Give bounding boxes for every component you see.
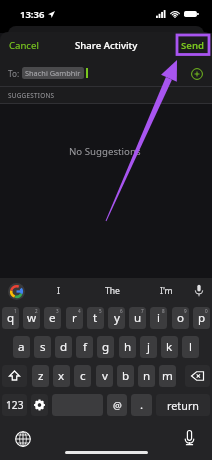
staticText: I — [57, 285, 60, 297]
staticText: . — [140, 397, 144, 413]
staticText: @ — [113, 399, 122, 412]
button[interactable]: m — [159, 365, 176, 387]
staticText: q — [7, 310, 15, 326]
button[interactable]: p — [193, 307, 210, 329]
staticText: Send — [181, 39, 205, 52]
staticText: 0 — [205, 308, 208, 314]
staticText: return — [167, 398, 200, 413]
staticText: d — [60, 339, 68, 355]
button[interactable]: Shift — [2, 365, 27, 387]
staticText: The — [105, 285, 120, 297]
button[interactable]: Shachi Gambhir — [25, 68, 81, 78]
staticText: m — [162, 368, 173, 384]
button[interactable]: q — [2, 307, 19, 329]
staticText: t — [93, 310, 98, 326]
staticText: To: — [8, 68, 20, 79]
staticText: u — [134, 310, 142, 326]
button[interactable]: Change language — [15, 431, 31, 447]
button[interactable]: g — [97, 336, 114, 358]
staticText: I'm — [160, 285, 173, 297]
staticText: Share Activity — [75, 39, 138, 52]
staticText: e — [49, 310, 56, 326]
button[interactable]: Keyboard settings — [31, 394, 48, 416]
staticText: 7 — [141, 308, 144, 314]
staticText: Shachi Gambhir — [25, 68, 81, 78]
button[interactable]: w — [23, 307, 40, 329]
staticText: x — [58, 368, 65, 384]
button[interactable]: a — [13, 336, 30, 358]
button[interactable]: o — [172, 307, 189, 329]
staticText: Cancel — [9, 39, 39, 52]
button[interactable]: u — [129, 307, 146, 329]
button[interactable]: h — [119, 336, 136, 358]
button[interactable]: Add contact — [191, 68, 203, 80]
staticText: 2 — [35, 308, 38, 314]
staticText: w — [27, 310, 37, 326]
button[interactable]: Cancel — [9, 39, 39, 52]
button[interactable]: Voice typing — [184, 430, 195, 446]
staticText: o — [177, 310, 185, 326]
button[interactable]: l — [182, 336, 199, 358]
button[interactable]: @ — [107, 394, 127, 416]
button[interactable]: t — [87, 307, 104, 329]
staticText: l — [189, 339, 192, 355]
button[interactable]: j — [140, 336, 157, 358]
staticText: r — [72, 310, 77, 326]
button[interactable]: k — [161, 336, 178, 358]
staticText: h — [124, 339, 132, 355]
button[interactable]: Google — [8, 283, 25, 300]
staticText: 9 — [184, 308, 187, 314]
staticText: 5 — [99, 308, 102, 314]
button[interactable]: y — [108, 307, 125, 329]
staticText: z — [38, 368, 44, 384]
button[interactable]: c — [74, 365, 91, 387]
staticText: y — [114, 310, 120, 326]
button[interactable]: d — [55, 336, 72, 358]
staticText: 4 — [78, 308, 81, 314]
button[interactable]: b — [117, 365, 134, 387]
button[interactable]: x — [53, 365, 70, 387]
button[interactable]: The — [87, 279, 137, 302]
button[interactable]: i — [150, 307, 167, 329]
staticText: b — [122, 368, 130, 384]
button[interactable]: f — [76, 336, 93, 358]
staticText: n — [143, 368, 151, 384]
staticText: c — [80, 368, 86, 384]
staticText: g — [102, 339, 110, 355]
staticText: 6 — [120, 308, 123, 314]
button[interactable]: v — [96, 365, 113, 387]
staticText: 3 — [56, 308, 59, 314]
button[interactable]: s — [34, 336, 51, 358]
staticText: 123 — [6, 398, 24, 412]
staticText: i — [157, 310, 160, 326]
button[interactable]: e — [44, 307, 61, 329]
staticText: k — [166, 339, 173, 355]
button[interactable]: r — [66, 307, 83, 329]
staticText: f — [83, 339, 87, 355]
button[interactable]: Voice input — [194, 284, 204, 297]
staticText: 1 — [14, 308, 17, 314]
staticText: p — [198, 310, 206, 326]
button[interactable]: z — [32, 365, 49, 387]
staticText: j — [147, 339, 150, 355]
button[interactable]: I — [33, 279, 83, 302]
button[interactable]: . — [131, 394, 152, 416]
button[interactable]: return — [156, 394, 210, 416]
staticText: SUGGESTIONS — [8, 91, 55, 100]
staticText: 8 — [162, 308, 165, 314]
staticText: 13:36 — [20, 8, 45, 21]
button[interactable]: Backspace — [185, 365, 210, 387]
staticText: a — [18, 339, 25, 355]
staticText: No Suggestions — [69, 145, 141, 158]
button[interactable]: Send — [181, 39, 205, 52]
button[interactable]: n — [138, 365, 155, 387]
staticText: v — [102, 368, 108, 384]
button[interactable]: 123 — [2, 394, 27, 416]
button[interactable]: I'm — [141, 279, 191, 302]
staticText: s — [40, 339, 46, 355]
